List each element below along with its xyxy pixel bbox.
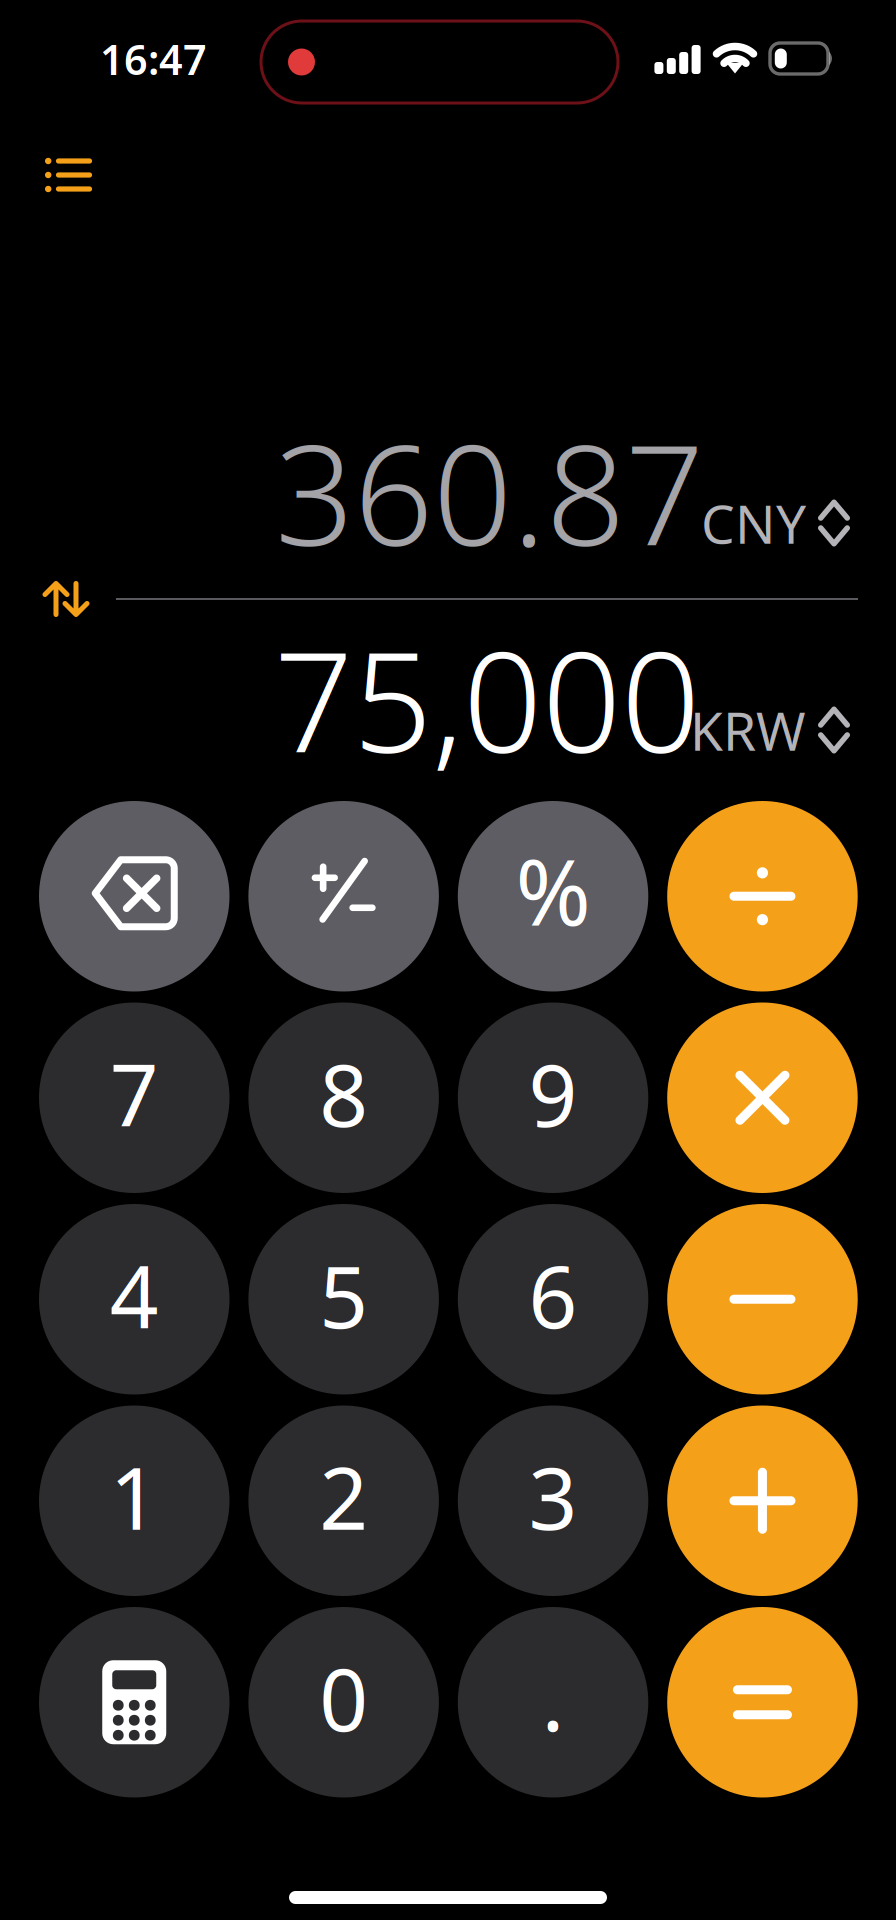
staticText: 16:47 [100,32,207,86]
button[interactable]: Select target currency KRW [690,704,850,756]
staticText: KRW [690,695,806,765]
staticText: 9 [528,1037,577,1150]
button[interactable]: 6 [458,1204,648,1394]
button[interactable]: 9 [458,1002,648,1193]
staticText: 7 [110,1037,159,1150]
staticText: 1 [110,1440,159,1553]
staticText: % [515,830,590,950]
button[interactable]: Toggle sign [248,801,439,991]
button[interactable]: . [458,1607,648,1797]
button[interactable]: Add [667,1405,858,1596]
staticText: CNY [701,488,806,558]
button[interactable]: 3 [458,1405,648,1596]
button[interactable]: 5 [248,1204,439,1394]
button[interactable]: Equals [667,1607,858,1797]
button[interactable]: Select source currency CNY [690,497,850,549]
staticText: 6 [528,1239,577,1352]
button[interactable]: Calculator [39,1607,229,1797]
button[interactable]: 2 [248,1405,439,1596]
staticText: 360.87 [275,400,704,584]
button[interactable]: 0 [248,1607,439,1797]
staticText: 4 [110,1239,159,1352]
button[interactable]: Currency list [21,141,116,209]
staticText: 2 [319,1440,368,1553]
button[interactable]: 7 [39,1002,229,1193]
button[interactable]: Subtract [667,1204,858,1394]
button[interactable]: 1 [39,1405,229,1596]
staticText: 0 [319,1642,368,1755]
staticText: 75,000 [274,607,700,791]
button[interactable]: Percent [458,801,648,991]
staticText: 8 [319,1037,368,1150]
staticText: 3 [528,1440,577,1553]
staticText: 5 [319,1239,368,1352]
button[interactable]: 8 [248,1002,439,1193]
button[interactable]: Delete [39,801,229,991]
button[interactable]: Multiply [667,1002,858,1193]
staticText: . [541,1642,564,1755]
button[interactable]: Divide [667,801,858,991]
button[interactable]: 4 [39,1204,229,1394]
